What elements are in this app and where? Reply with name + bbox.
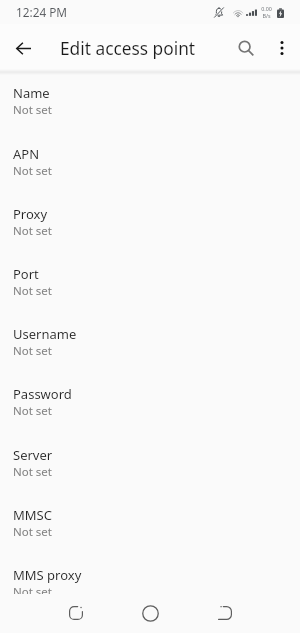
staticText: MMSC — [13, 506, 52, 524]
staticText: Proxy — [13, 205, 48, 223]
button[interactable]: Password — [0, 385, 300, 445]
staticText: MMS proxy — [13, 566, 82, 584]
staticText: Password — [13, 385, 72, 403]
button[interactable]: Home — [120, 593, 180, 633]
button[interactable]: Recent apps — [46, 593, 106, 633]
staticText: Username — [13, 325, 77, 343]
button[interactable]: Navigate up — [3, 24, 44, 72]
staticText: Not set — [13, 283, 52, 299]
staticText: Port — [13, 265, 39, 283]
button[interactable]: Proxy — [0, 205, 300, 265]
staticText: Not set — [13, 464, 52, 480]
button[interactable]: Server — [0, 446, 300, 506]
staticText: Name — [13, 84, 50, 102]
staticText: Not set — [13, 403, 52, 419]
button[interactable]: Back — [195, 593, 255, 633]
button[interactable]: APN — [0, 145, 300, 205]
staticText: Not set — [13, 102, 52, 118]
staticText: B/s — [262, 12, 271, 19]
button[interactable]: Port — [0, 265, 300, 325]
button[interactable]: MMS proxy — [0, 566, 300, 594]
staticText: APN — [13, 145, 40, 163]
button[interactable]: Name — [0, 84, 300, 144]
staticText: Server — [13, 446, 53, 464]
button[interactable]: More options — [266, 24, 298, 72]
button[interactable]: MMSC — [0, 506, 300, 566]
staticText: Not set — [13, 223, 52, 239]
button[interactable]: Search — [228, 24, 264, 72]
staticText: Edit access point — [60, 37, 196, 61]
staticText: 12:24 PM — [16, 4, 68, 20]
staticText: Not set — [13, 343, 52, 359]
staticText: Not set — [13, 524, 52, 540]
button[interactable]: Username — [0, 325, 300, 385]
staticText: Not set — [13, 163, 52, 179]
staticText: Not set — [13, 584, 52, 594]
staticText: 0.00 — [261, 5, 272, 12]
